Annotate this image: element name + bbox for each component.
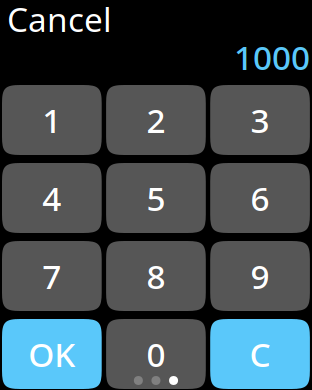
button[interactable]: 1 — [2, 85, 102, 155]
staticText: 9 — [251, 254, 270, 298]
staticText: 2 — [146, 98, 165, 142]
staticText: 1 — [42, 98, 61, 142]
button[interactable]: 2 — [106, 85, 206, 155]
staticText: C — [250, 332, 271, 376]
staticText: 0 — [146, 332, 165, 376]
staticText: 5 — [146, 176, 165, 220]
staticText: OK — [28, 332, 75, 376]
button[interactable]: 4 — [2, 163, 102, 233]
staticText: 6 — [251, 176, 270, 220]
staticText: 4 — [42, 176, 61, 220]
button[interactable]: 9 — [210, 241, 310, 311]
staticText: 7 — [42, 254, 61, 298]
button[interactable]: 3 — [210, 85, 310, 155]
button[interactable]: OK — [2, 319, 102, 389]
staticText: Cancel — [7, 0, 112, 41]
staticText: 1000 — [234, 35, 310, 79]
button[interactable]: 5 — [106, 163, 206, 233]
button[interactable]: 0 — [106, 319, 206, 389]
button[interactable]: C — [210, 319, 310, 389]
button[interactable]: 6 — [210, 163, 310, 233]
staticText: 8 — [146, 254, 165, 298]
button[interactable]: 7 — [2, 241, 102, 311]
button[interactable]: Cancel — [0, 0, 147, 38]
button[interactable]: 8 — [106, 241, 206, 311]
staticText: 3 — [251, 98, 270, 142]
